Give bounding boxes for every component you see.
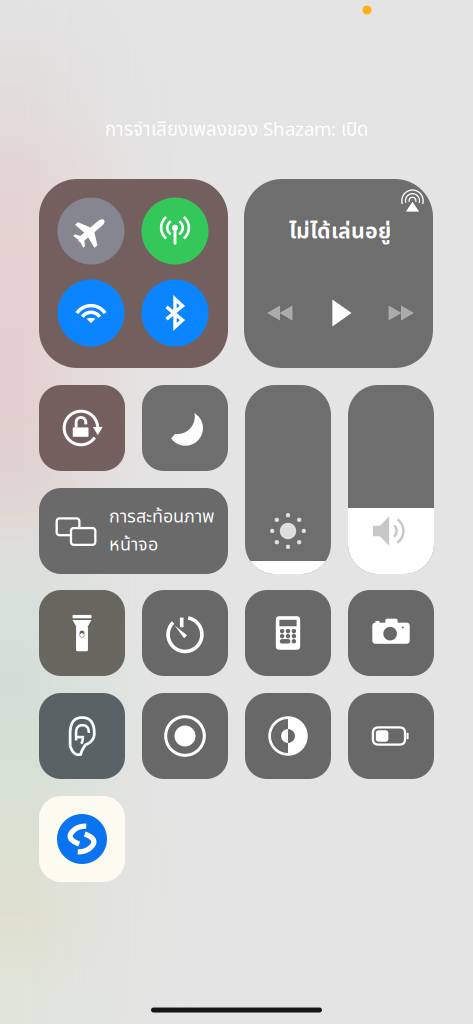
button[interactable] xyxy=(348,693,434,779)
button[interactable] xyxy=(39,590,125,676)
staticText: การสะท้อนภาพ xyxy=(109,503,215,530)
button[interactable] xyxy=(245,590,331,676)
button[interactable] xyxy=(39,179,228,368)
button[interactable] xyxy=(245,385,331,574)
staticText: หน้าจอ xyxy=(109,531,158,559)
button[interactable] xyxy=(348,385,434,574)
staticText: การจำเสียงเพลงของ Shazam: เปิด xyxy=(105,116,368,144)
button[interactable] xyxy=(39,693,125,779)
staticText: ไม่ได้เล่นอยู่ xyxy=(289,216,391,248)
button[interactable] xyxy=(142,590,228,676)
button[interactable] xyxy=(142,693,228,779)
button[interactable]: การสะท้อนภาพ xyxy=(39,488,228,574)
button[interactable] xyxy=(348,590,434,676)
button[interactable] xyxy=(142,385,228,471)
button[interactable] xyxy=(245,693,331,779)
button[interactable]: Shazam xyxy=(39,796,125,882)
button[interactable] xyxy=(39,385,125,471)
button[interactable]: ไม่ได้เล่นอยู่ xyxy=(244,179,433,368)
